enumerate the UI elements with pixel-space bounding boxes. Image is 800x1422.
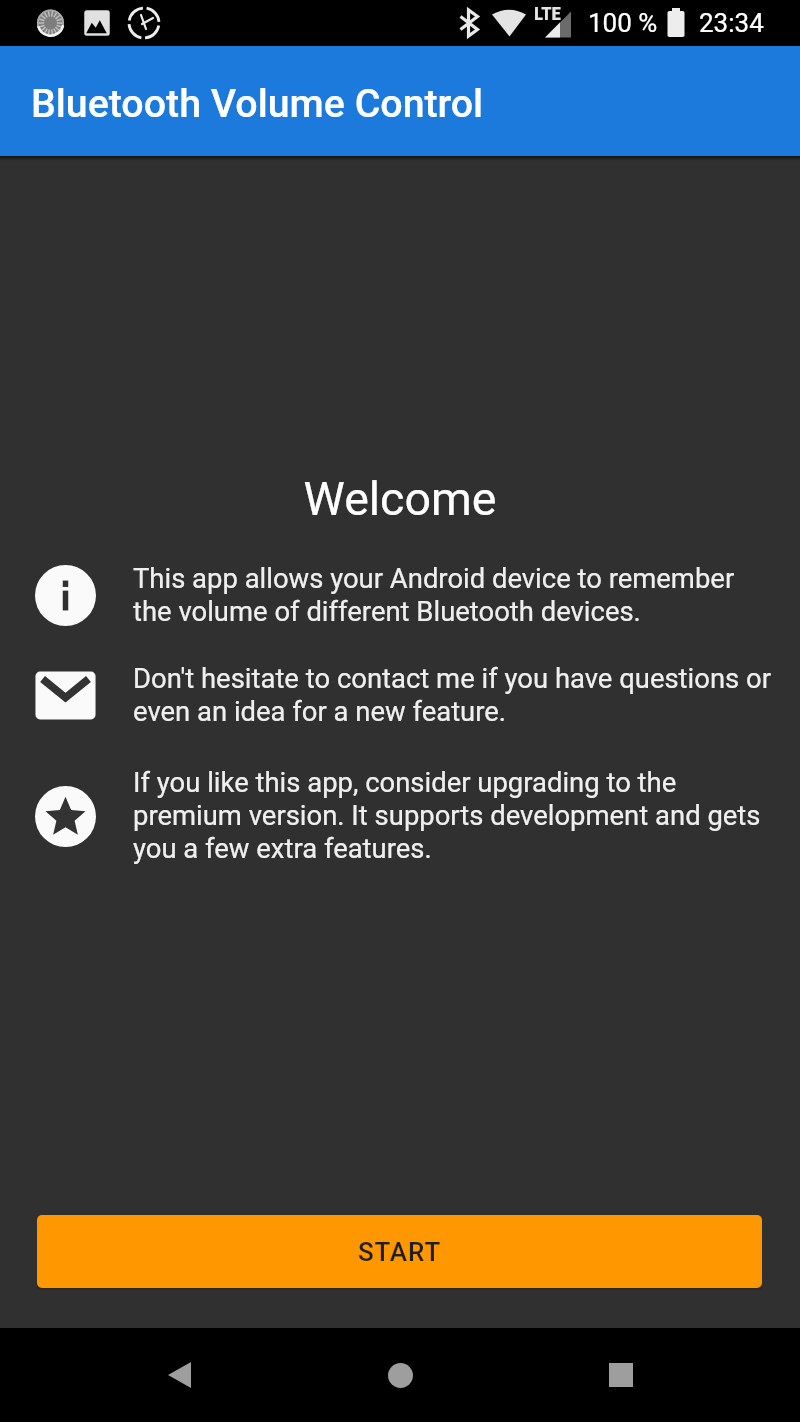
button[interactable]: Home (355, 1328, 445, 1422)
staticText: If you like this app, consider upgrading… (133, 767, 772, 865)
button[interactable]: START (37, 1215, 762, 1288)
staticText: 23:34 (699, 8, 764, 38)
staticText: LTE (534, 2, 561, 24)
staticText: 100 % (588, 8, 658, 38)
staticText: Welcome (0, 472, 800, 526)
staticText: Don't hesitate to contact me if you have… (133, 663, 772, 728)
staticText: START (358, 1237, 442, 1267)
button[interactable]: Recent apps (576, 1328, 666, 1422)
staticText: Bluetooth Volume Control (31, 81, 484, 127)
button[interactable]: Back (134, 1328, 224, 1422)
staticText: This app allows your Android device to r… (133, 563, 772, 628)
